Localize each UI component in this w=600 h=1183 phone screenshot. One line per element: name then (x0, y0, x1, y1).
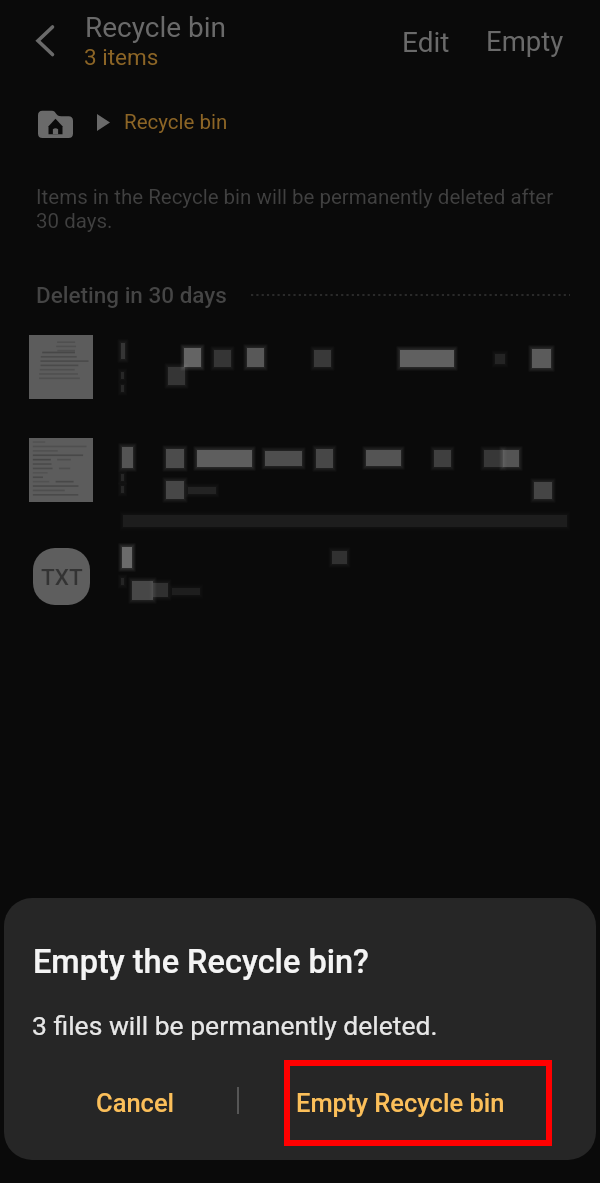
button[interactable]: Cancel (30, 1068, 240, 1138)
staticText: Cancel (96, 1088, 175, 1118)
button[interactable] (0, 325, 600, 425)
button[interactable]: Back (22, 18, 68, 64)
button[interactable]: Edit (391, 19, 461, 65)
staticText: Recycle bin (124, 110, 228, 134)
staticText: Deleting in 30 days (36, 282, 227, 308)
button[interactable]: TXT (0, 533, 600, 623)
staticText: 3 items (84, 44, 159, 70)
staticText: Recycle bin (85, 11, 227, 44)
staticText: Empty Recycle bin (296, 1088, 505, 1118)
button[interactable] (0, 428, 600, 528)
staticText: Items in the Recycle bin will be permane… (36, 185, 576, 233)
staticText: Empty (486, 25, 564, 57)
button[interactable]: Empty (475, 18, 575, 64)
button[interactable]: Home folder (38, 107, 73, 138)
staticText: Empty the Recycle bin? (33, 943, 369, 981)
button[interactable]: Recycle bin (124, 110, 228, 134)
staticText: 3 files will be permanently deleted. (32, 1010, 438, 1041)
staticText: TXT (41, 564, 83, 590)
button[interactable]: Empty Recycle bin (244, 1068, 556, 1138)
staticText: Edit (402, 26, 450, 59)
